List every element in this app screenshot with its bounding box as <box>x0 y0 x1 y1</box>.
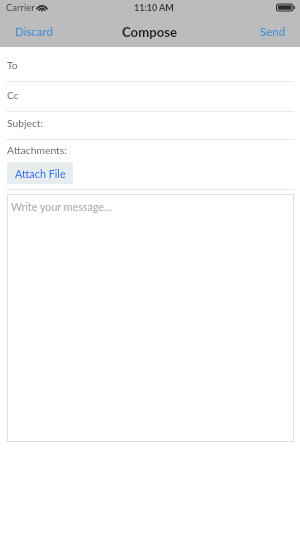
button[interactable] <box>0 112 300 140</box>
staticText: Discard <box>15 25 53 39</box>
staticText: To <box>7 59 18 71</box>
staticText: 11:10 AM <box>134 2 174 13</box>
staticText: Write your message... <box>11 200 112 213</box>
staticText: Subject: <box>7 117 44 129</box>
button[interactable]: Attach File <box>7 162 73 184</box>
staticText: Attachments: <box>7 144 67 156</box>
staticText: Cc <box>7 89 19 101</box>
button[interactable] <box>0 52 300 82</box>
button[interactable]: Write your message... <box>7 194 294 442</box>
staticText: Compose <box>122 24 178 40</box>
button[interactable] <box>0 82 300 112</box>
button[interactable]: Discard <box>0 21 63 43</box>
staticText: Carrier <box>6 2 35 13</box>
button[interactable]: Send <box>250 21 300 43</box>
staticText: Send <box>260 25 286 39</box>
staticText: Attach File <box>15 167 66 180</box>
other: Battery <box>276 3 296 12</box>
other: Wi-Fi signal <box>37 3 47 12</box>
